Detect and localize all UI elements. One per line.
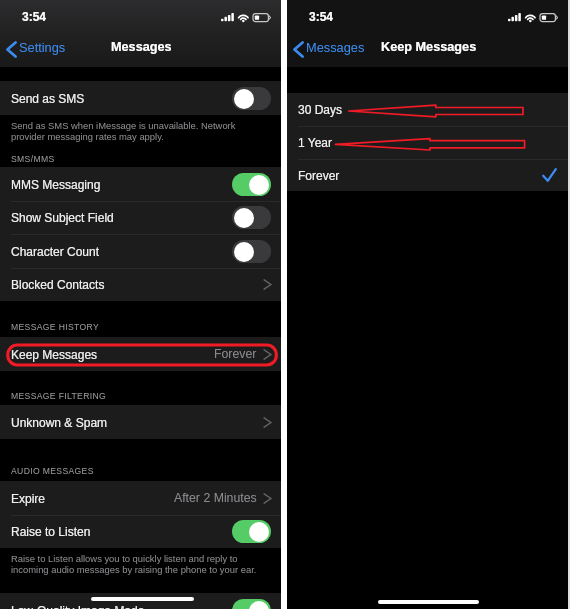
staticText: SMS/MMS — [11, 154, 55, 164]
staticText: 3:54 — [22, 10, 47, 23]
staticText: MESSAGE FILTERING — [11, 391, 107, 401]
staticText: Blocked Contacts — [11, 278, 105, 291]
staticText: Messages — [306, 40, 365, 54]
staticText: Keep Messages — [11, 348, 98, 361]
button[interactable]: Raise to Listen — [0, 515, 281, 548]
button[interactable]: Keep Messages — [0, 337, 281, 371]
button[interactable]: Send as SMS — [0, 81, 281, 115]
staticText: 30 Days — [298, 103, 343, 116]
staticText: Send as SMS when iMessage is unavailable… — [11, 120, 236, 131]
staticText: Messages — [111, 40, 172, 54]
button[interactable]: Forever — [287, 159, 568, 191]
staticText: Send as SMS — [11, 92, 85, 105]
staticText: Character Count — [11, 245, 100, 258]
button[interactable]: Show Subject Field — [0, 201, 281, 234]
button[interactable]: Blocked Contacts — [0, 268, 281, 301]
staticText: Forever — [214, 347, 257, 361]
button[interactable]: Toggle — [232, 240, 271, 263]
staticText: After 2 Minutes — [174, 491, 257, 505]
staticText: Low-Quality Image Mode — [11, 604, 145, 609]
button[interactable]: Character Count — [0, 234, 281, 268]
staticText: Show Subject Field — [11, 211, 114, 224]
staticText: Expire — [11, 492, 46, 505]
staticText: 3:54 — [309, 10, 334, 23]
button[interactable] — [290, 32, 371, 64]
button[interactable]: Expire — [0, 481, 281, 515]
button[interactable]: Low-Quality Image Mode — [0, 593, 281, 609]
button[interactable]: 1 Year — [287, 126, 568, 159]
button[interactable]: Toggle — [232, 206, 271, 229]
staticText: incoming audio messages by raising the p… — [11, 564, 257, 575]
staticText: Raise to Listen allows you to quickly li… — [11, 553, 238, 564]
staticText: Raise to Listen — [11, 525, 91, 538]
button[interactable]: Toggle — [232, 520, 271, 543]
staticText: Unknown & Spam — [11, 416, 108, 429]
staticText: AUDIO MESSAGES — [11, 466, 94, 476]
staticText: Settings — [19, 40, 66, 54]
staticText: MESSAGE HISTORY — [11, 322, 100, 332]
staticText: Forever — [298, 169, 340, 182]
button[interactable] — [3, 32, 84, 64]
button[interactable]: Toggle — [232, 173, 271, 196]
button[interactable]: 30 Days — [287, 93, 568, 126]
staticText: provider messaging rates may apply. — [11, 131, 164, 142]
button[interactable]: Toggle — [232, 599, 271, 609]
button[interactable]: MMS Messaging — [0, 167, 281, 201]
staticText: 1 Year — [298, 136, 333, 149]
button[interactable]: Toggle — [232, 87, 271, 110]
button[interactable]: Unknown & Spam — [0, 405, 281, 439]
staticText: Keep Messages — [381, 40, 477, 54]
staticText: MMS Messaging — [11, 178, 101, 191]
